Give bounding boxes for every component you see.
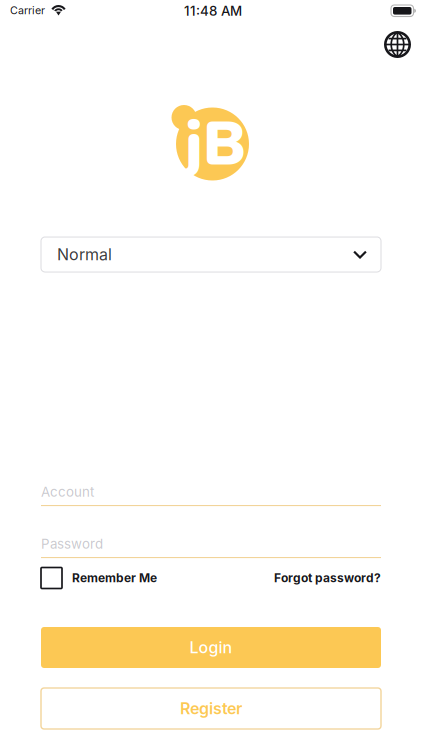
button[interactable]: Login — [41, 627, 381, 668]
button[interactable]: Register — [41, 688, 381, 729]
staticText: Account — [41, 484, 94, 500]
staticText: 11:48 AM — [184, 3, 242, 19]
button[interactable]: Forgot password? — [221, 566, 381, 590]
staticText: Carrier — [10, 4, 45, 17]
staticText: Register — [180, 699, 242, 718]
staticText: Remember Me — [72, 571, 157, 585]
staticText: Forgot password? — [274, 571, 381, 585]
staticText: Normal — [57, 245, 112, 264]
staticText: Password — [41, 536, 103, 552]
staticText: jB — [185, 102, 246, 186]
button[interactable]: Change language — [375, 22, 420, 67]
button[interactable]: Normal — [41, 237, 381, 272]
staticText: Login — [189, 638, 232, 657]
button[interactable]: Remember Me — [41, 566, 171, 590]
